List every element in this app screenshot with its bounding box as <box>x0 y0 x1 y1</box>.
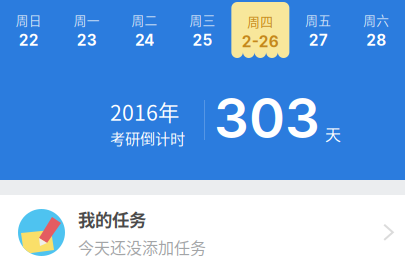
staticText: 考研倒计时 <box>110 127 185 149</box>
staticText: 27 <box>309 31 328 49</box>
staticText: 24 <box>135 31 154 49</box>
staticText: 今天还没添加任务 <box>78 235 206 259</box>
staticText: 周日 <box>16 11 42 29</box>
staticText: 周一 <box>74 11 100 29</box>
staticText: 23 <box>77 31 97 49</box>
staticText: 28 <box>366 31 386 49</box>
button[interactable]: 我的任务 <box>0 195 405 270</box>
staticText: 2-26 <box>242 32 279 51</box>
staticText: 22 <box>19 31 39 49</box>
staticText: 周二 <box>132 11 158 29</box>
staticText: 周四 <box>247 12 273 30</box>
staticText: 天 <box>325 122 341 145</box>
staticText: 303 <box>214 85 320 151</box>
staticText: 周五 <box>305 11 331 29</box>
staticText: 我的任务 <box>78 206 146 231</box>
staticText: 周六 <box>363 11 389 29</box>
staticText: 周三 <box>189 11 215 29</box>
staticText: 25 <box>192 31 212 49</box>
staticText: 2016年 <box>110 96 179 127</box>
